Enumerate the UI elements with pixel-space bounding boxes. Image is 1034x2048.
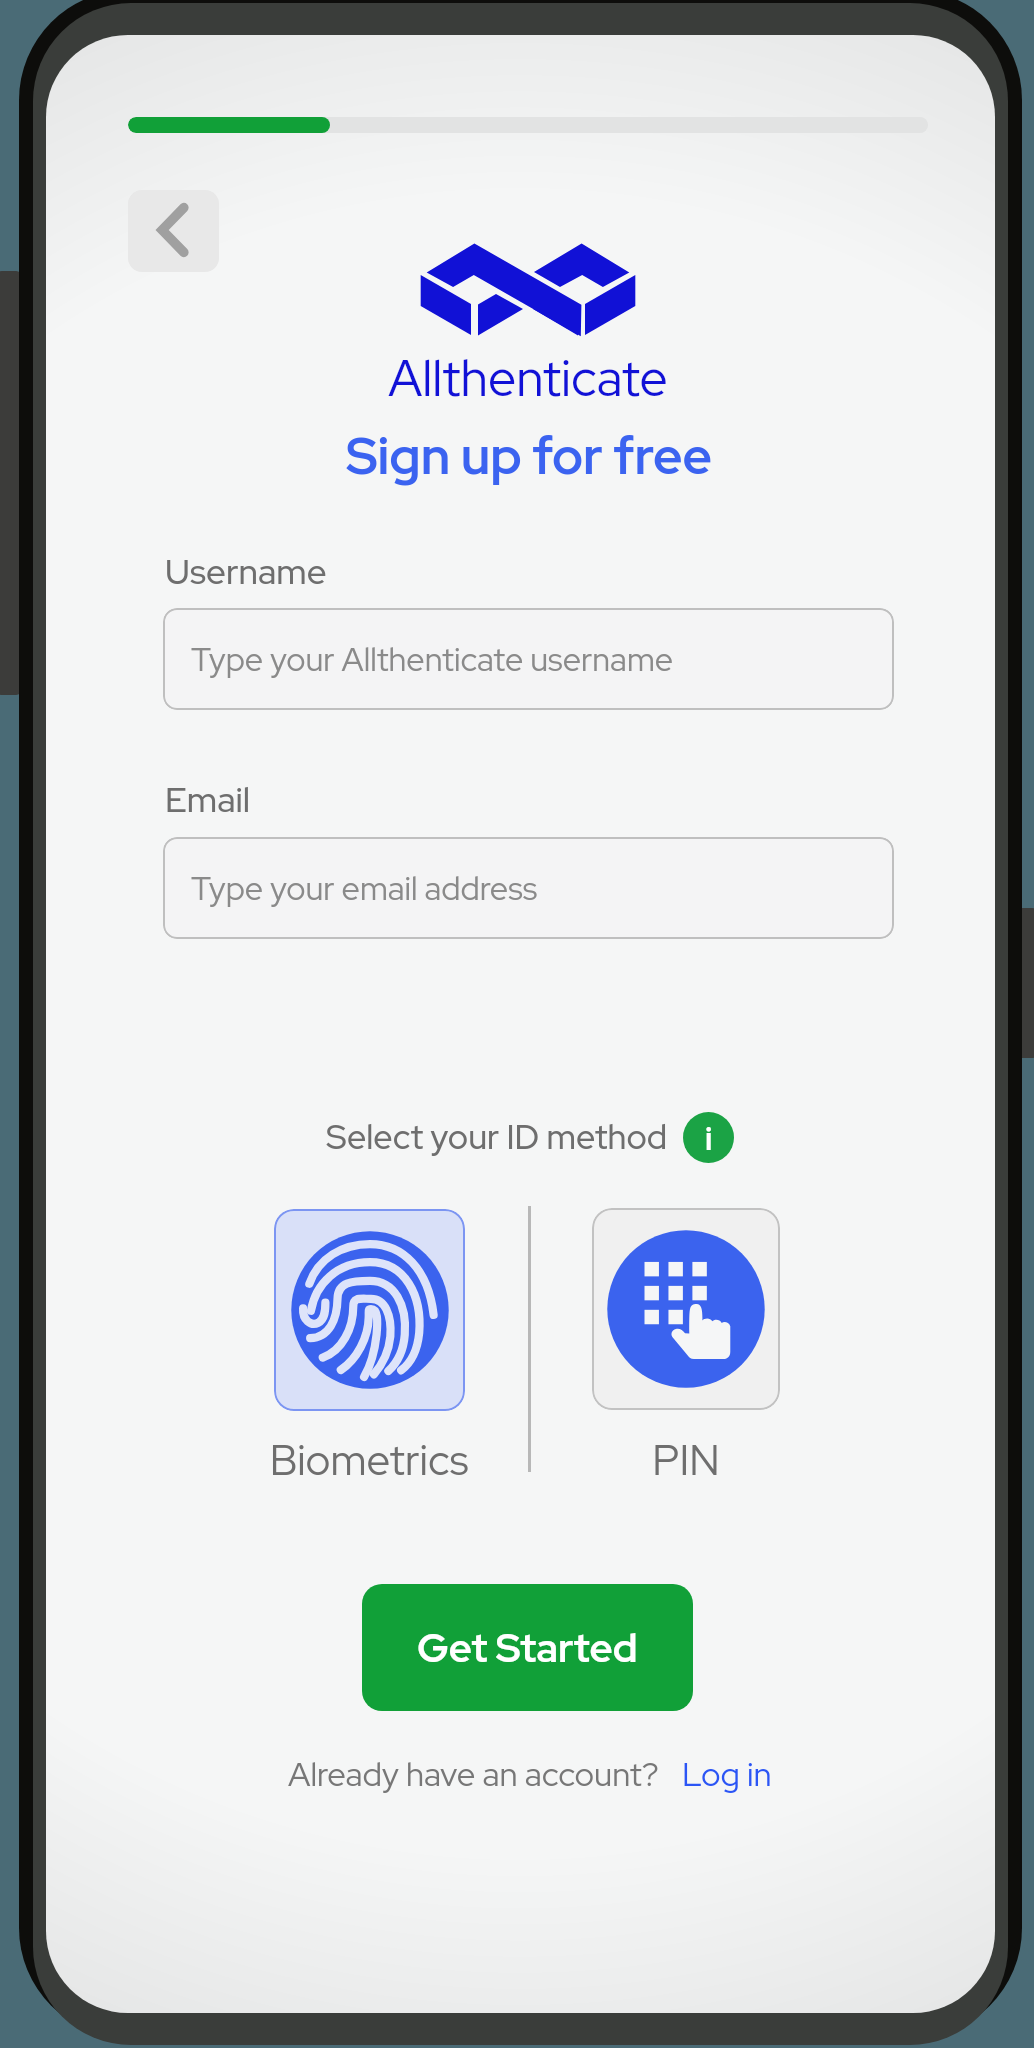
button[interactable]: Info xyxy=(683,1112,734,1163)
staticText: Allthenticate xyxy=(78,345,978,411)
button[interactable]: Type your Allthenticate username xyxy=(163,608,894,710)
staticText: Biometrics xyxy=(219,1432,519,1488)
button[interactable]: Back xyxy=(128,190,219,272)
button[interactable]: Biometrics xyxy=(274,1209,465,1411)
button[interactable]: Log in xyxy=(678,1748,776,1800)
staticText: Type your Allthenticate username xyxy=(191,638,674,681)
staticText: Type your email address xyxy=(191,867,538,910)
staticText: Select your ID method xyxy=(326,1114,668,1159)
staticText: Log in xyxy=(682,1752,772,1796)
staticText: Username xyxy=(165,548,327,594)
staticText: Already have an account? xyxy=(288,1752,659,1796)
staticText: Get Started xyxy=(417,1621,638,1674)
staticText: PIN xyxy=(536,1432,836,1488)
staticText: i xyxy=(705,1117,713,1159)
button[interactable]: Type your email address xyxy=(163,837,894,939)
staticText: Sign up for free xyxy=(79,422,979,489)
button[interactable]: Get Started xyxy=(362,1584,693,1711)
button[interactable]: PIN xyxy=(592,1208,780,1410)
staticText: Email xyxy=(165,776,251,822)
